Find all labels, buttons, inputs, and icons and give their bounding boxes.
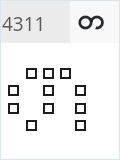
staticText: 4311 xyxy=(2,11,46,37)
staticText: တ xyxy=(77,0,106,42)
